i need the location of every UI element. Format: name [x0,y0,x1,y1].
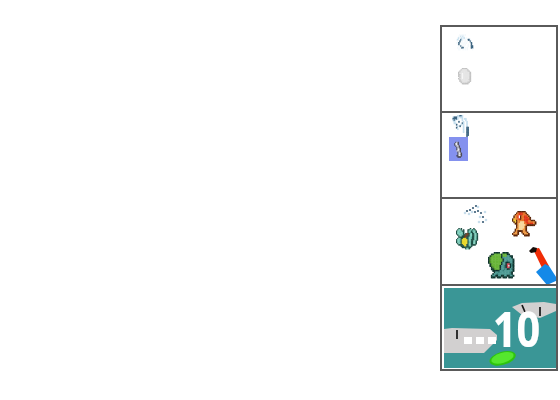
button[interactable]: 10 [442,286,556,369]
staticText: 10 [493,296,540,361]
button[interactable] [442,199,556,284]
button[interactable] [442,27,556,111]
button[interactable] [442,113,556,197]
